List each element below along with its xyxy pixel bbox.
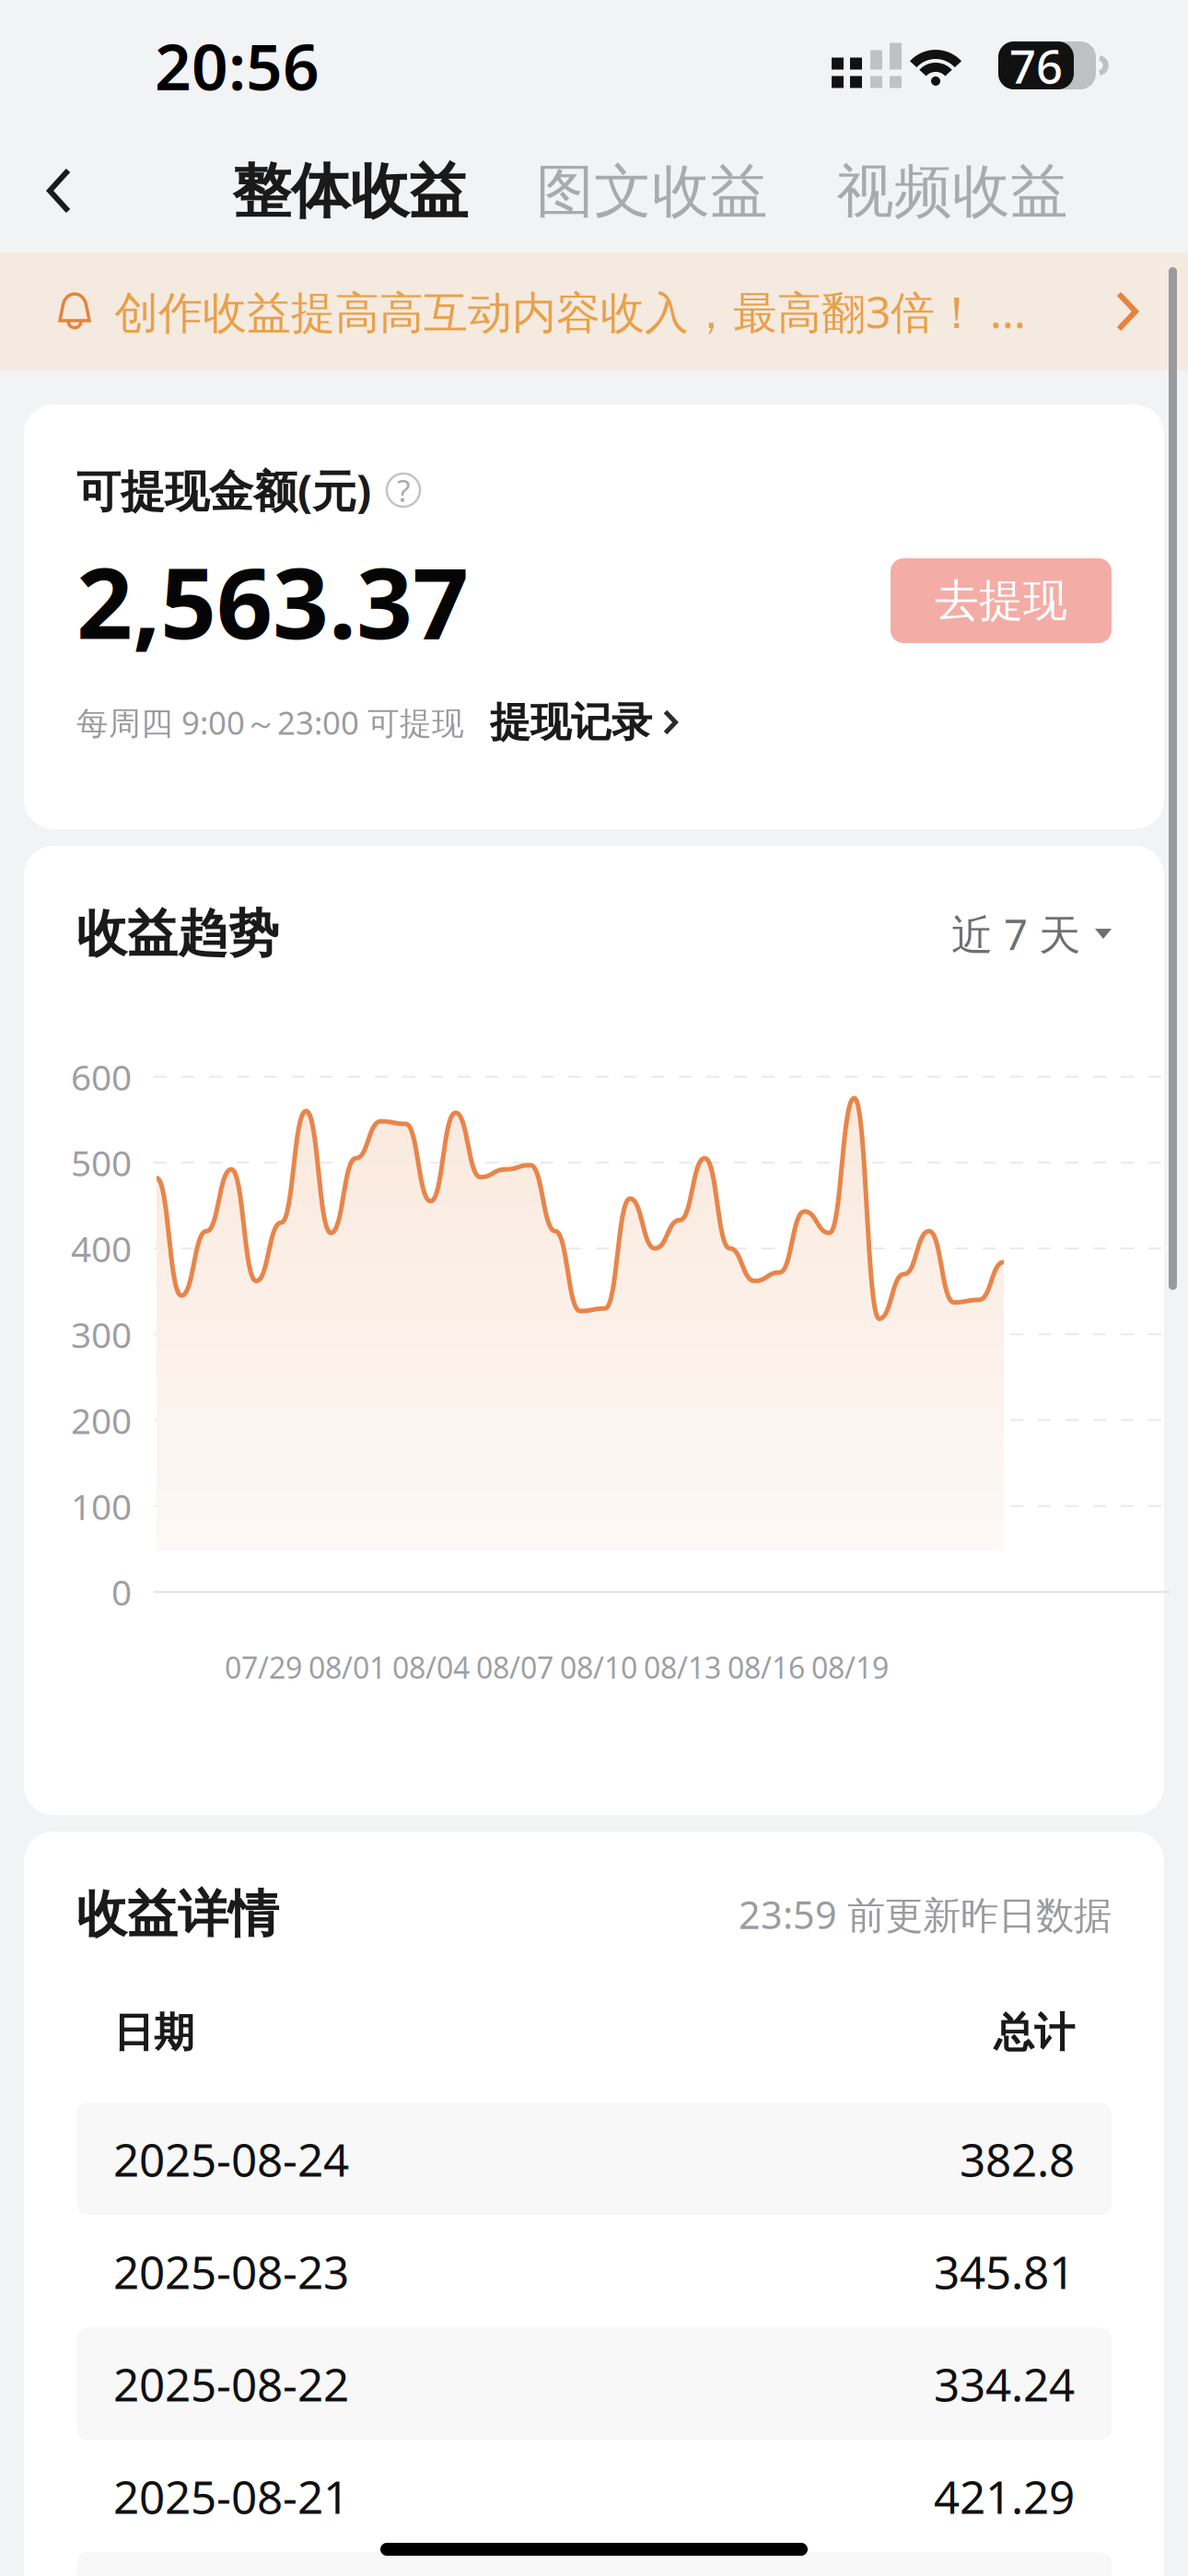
button[interactable]: 近 7 天 bbox=[951, 906, 1112, 962]
button[interactable]: 视频收益 bbox=[823, 131, 1081, 252]
staticText: 创作收益提高高互动内容收入，最高翻3倍！ ... bbox=[114, 282, 1026, 341]
staticText: 近 7 天 bbox=[951, 906, 1080, 962]
staticText: 08/16 bbox=[728, 1648, 805, 1687]
staticText: 2025-08-22 bbox=[113, 2354, 349, 2414]
staticText: 500 bbox=[71, 1139, 132, 1186]
button[interactable]: 创作收益提高高互动内容收入，最高翻3倍！ ... bbox=[0, 252, 1188, 370]
staticText: 总计 bbox=[994, 2008, 1075, 2058]
staticText: 2,563.37 bbox=[76, 535, 469, 666]
staticText: 2025-08-24 bbox=[113, 2129, 349, 2189]
staticText: 421.29 bbox=[934, 2466, 1075, 2526]
staticText: ? bbox=[397, 470, 410, 511]
staticText: 日期 bbox=[113, 2008, 194, 2058]
staticText: 2025-08-23 bbox=[113, 2241, 349, 2302]
staticText: 23:59 前更新昨日数据 bbox=[739, 1889, 1112, 1940]
button[interactable]: 整体收益 bbox=[219, 131, 481, 252]
staticText: 0 bbox=[111, 1568, 132, 1616]
staticText: 08/10 bbox=[560, 1648, 637, 1687]
staticText: 100 bbox=[71, 1482, 132, 1530]
staticText: 07/29 bbox=[225, 1648, 302, 1687]
staticText: 345.81 bbox=[934, 2241, 1075, 2302]
staticText: 08/01 bbox=[309, 1648, 386, 1687]
staticText: 每周四 9:00～23:00 可提现 bbox=[76, 701, 464, 744]
staticText: 200 bbox=[71, 1397, 132, 1444]
staticText: 76 bbox=[1009, 34, 1063, 96]
staticText: 382.8 bbox=[960, 2129, 1075, 2189]
staticText: 08/07 bbox=[476, 1648, 553, 1687]
button[interactable]: 图文收益 bbox=[523, 131, 781, 252]
staticText: 收益详情 bbox=[76, 1883, 279, 1945]
staticText: 600 bbox=[71, 1053, 132, 1100]
staticText: 2025-08-21 bbox=[113, 2466, 349, 2526]
button[interactable]: 去提现 bbox=[891, 558, 1112, 643]
staticText: 08/13 bbox=[644, 1648, 721, 1687]
staticText: 300 bbox=[71, 1311, 132, 1358]
staticText: 整体收益 bbox=[232, 155, 468, 228]
staticText: 08/19 bbox=[811, 1648, 889, 1687]
button[interactable]: Back bbox=[0, 131, 120, 252]
staticText: 334.24 bbox=[934, 2354, 1075, 2414]
staticText: 视频收益 bbox=[836, 156, 1068, 227]
staticText: 去提现 bbox=[935, 574, 1067, 628]
staticText: 08/04 bbox=[392, 1648, 470, 1687]
staticText: 提现记录 bbox=[490, 697, 652, 747]
staticText: 400 bbox=[71, 1225, 132, 1272]
staticText: 可提现金额(元) bbox=[76, 461, 371, 519]
staticText: 收益趋势 bbox=[76, 903, 279, 965]
staticText: 20:56 bbox=[155, 23, 320, 108]
button[interactable]: 提现记录 bbox=[464, 697, 678, 747]
staticText: 图文收益 bbox=[536, 156, 768, 227]
